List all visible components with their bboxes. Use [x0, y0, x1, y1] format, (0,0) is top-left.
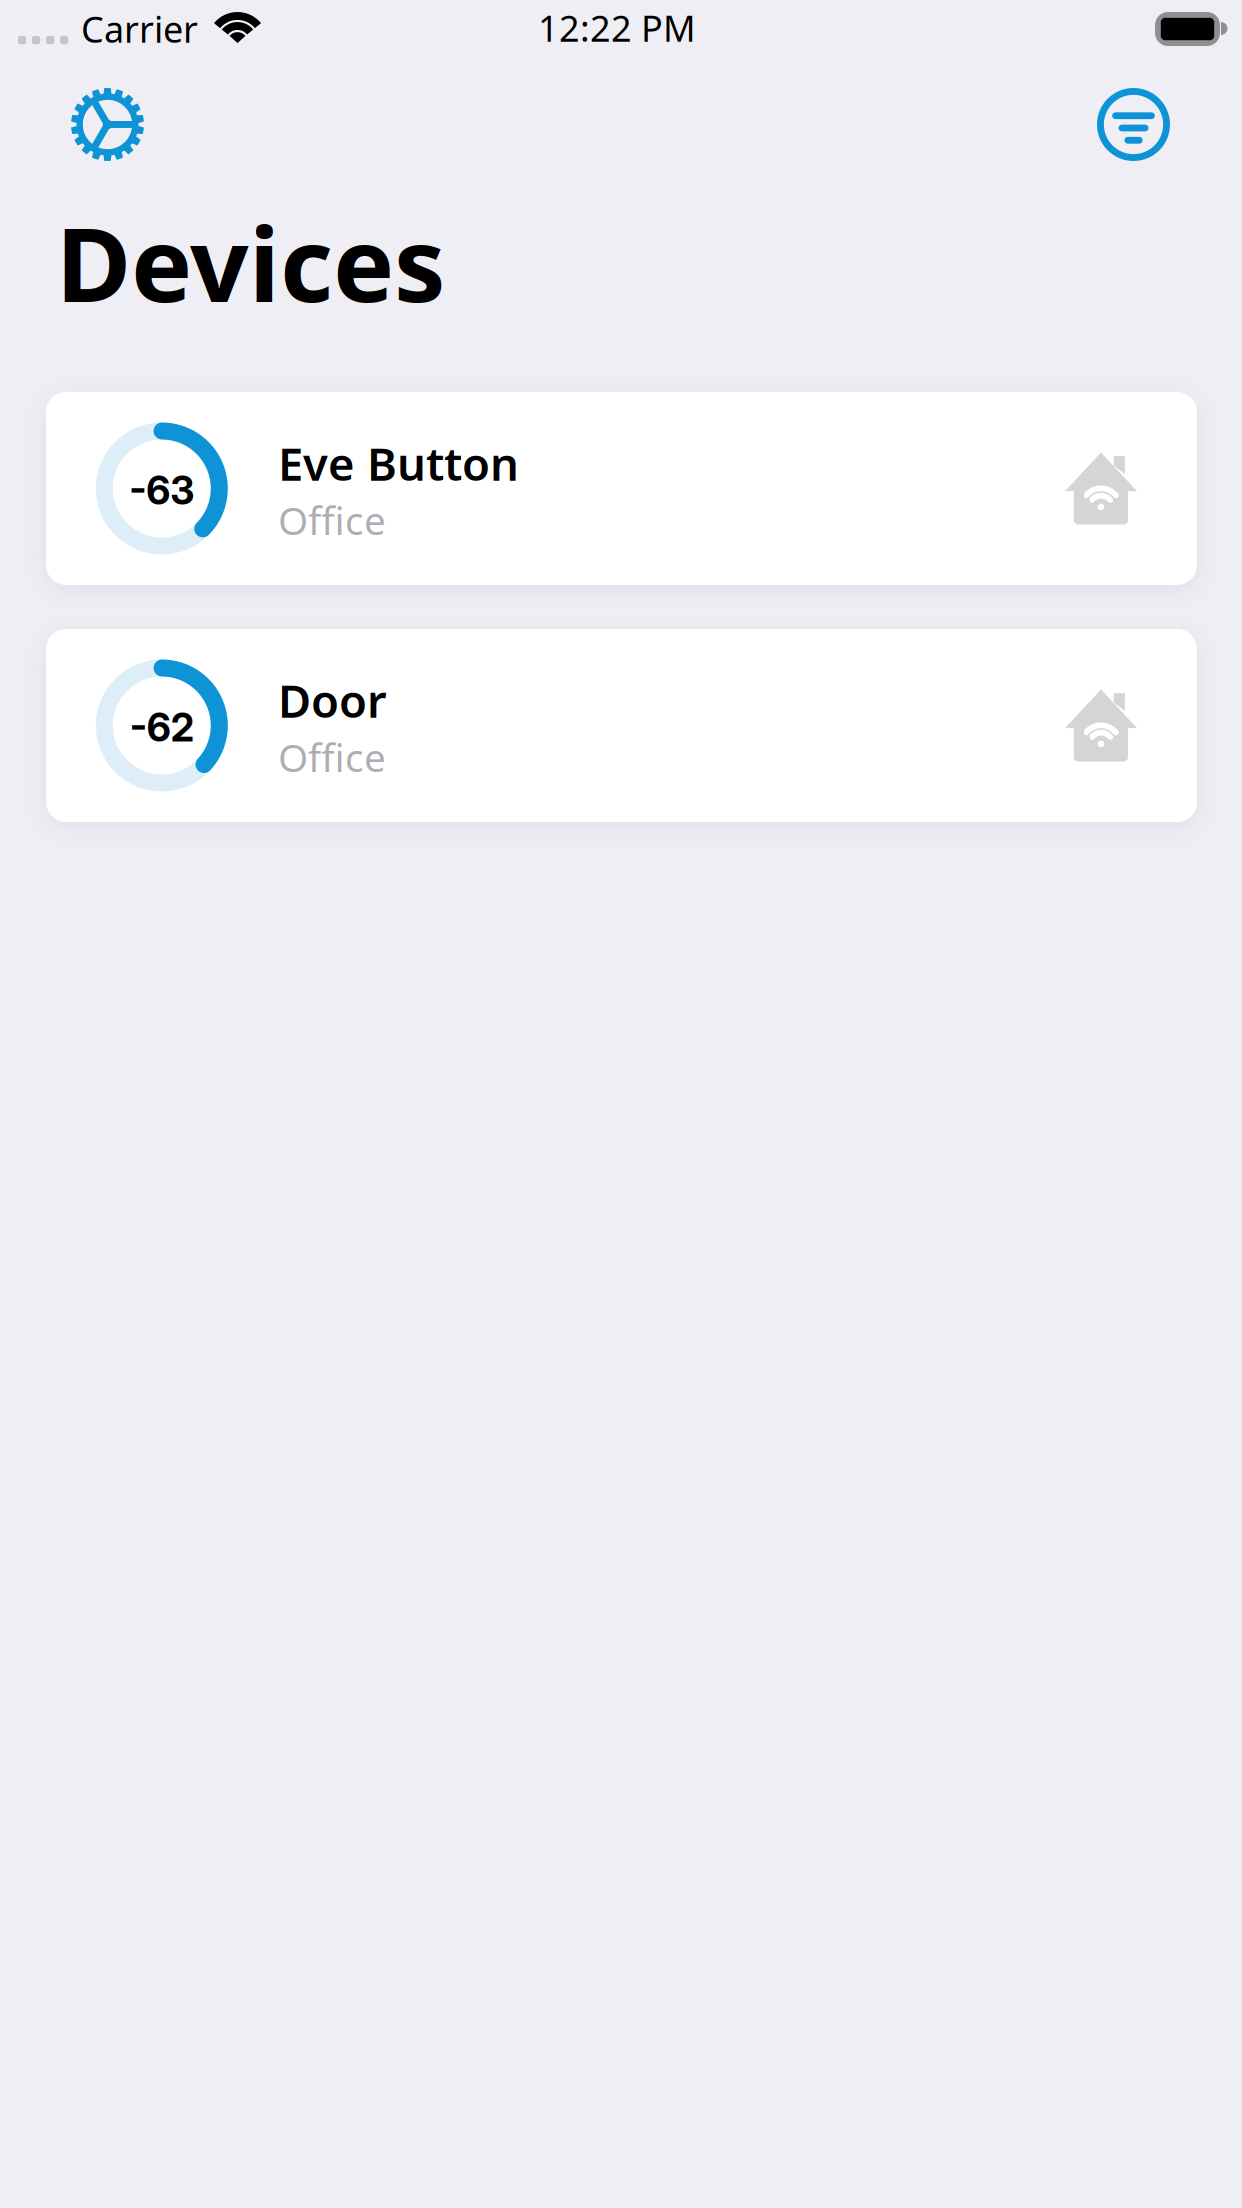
staticText: 12:22 PM [538, 4, 696, 52]
button[interactable]: Settings [41, 58, 173, 190]
button[interactable]: -63 [46, 392, 1197, 585]
staticText: -62 [130, 704, 194, 751]
staticText: Office [278, 494, 386, 545]
button[interactable]: Filter [1067, 58, 1199, 190]
staticText: Devices [56, 194, 446, 330]
staticText: Door [278, 670, 387, 730]
staticText: Office [278, 731, 386, 782]
staticText: Eve Button [278, 433, 519, 493]
staticText: Carrier [81, 5, 198, 53]
button[interactable]: -62 [46, 629, 1197, 822]
staticText: -63 [129, 467, 194, 514]
